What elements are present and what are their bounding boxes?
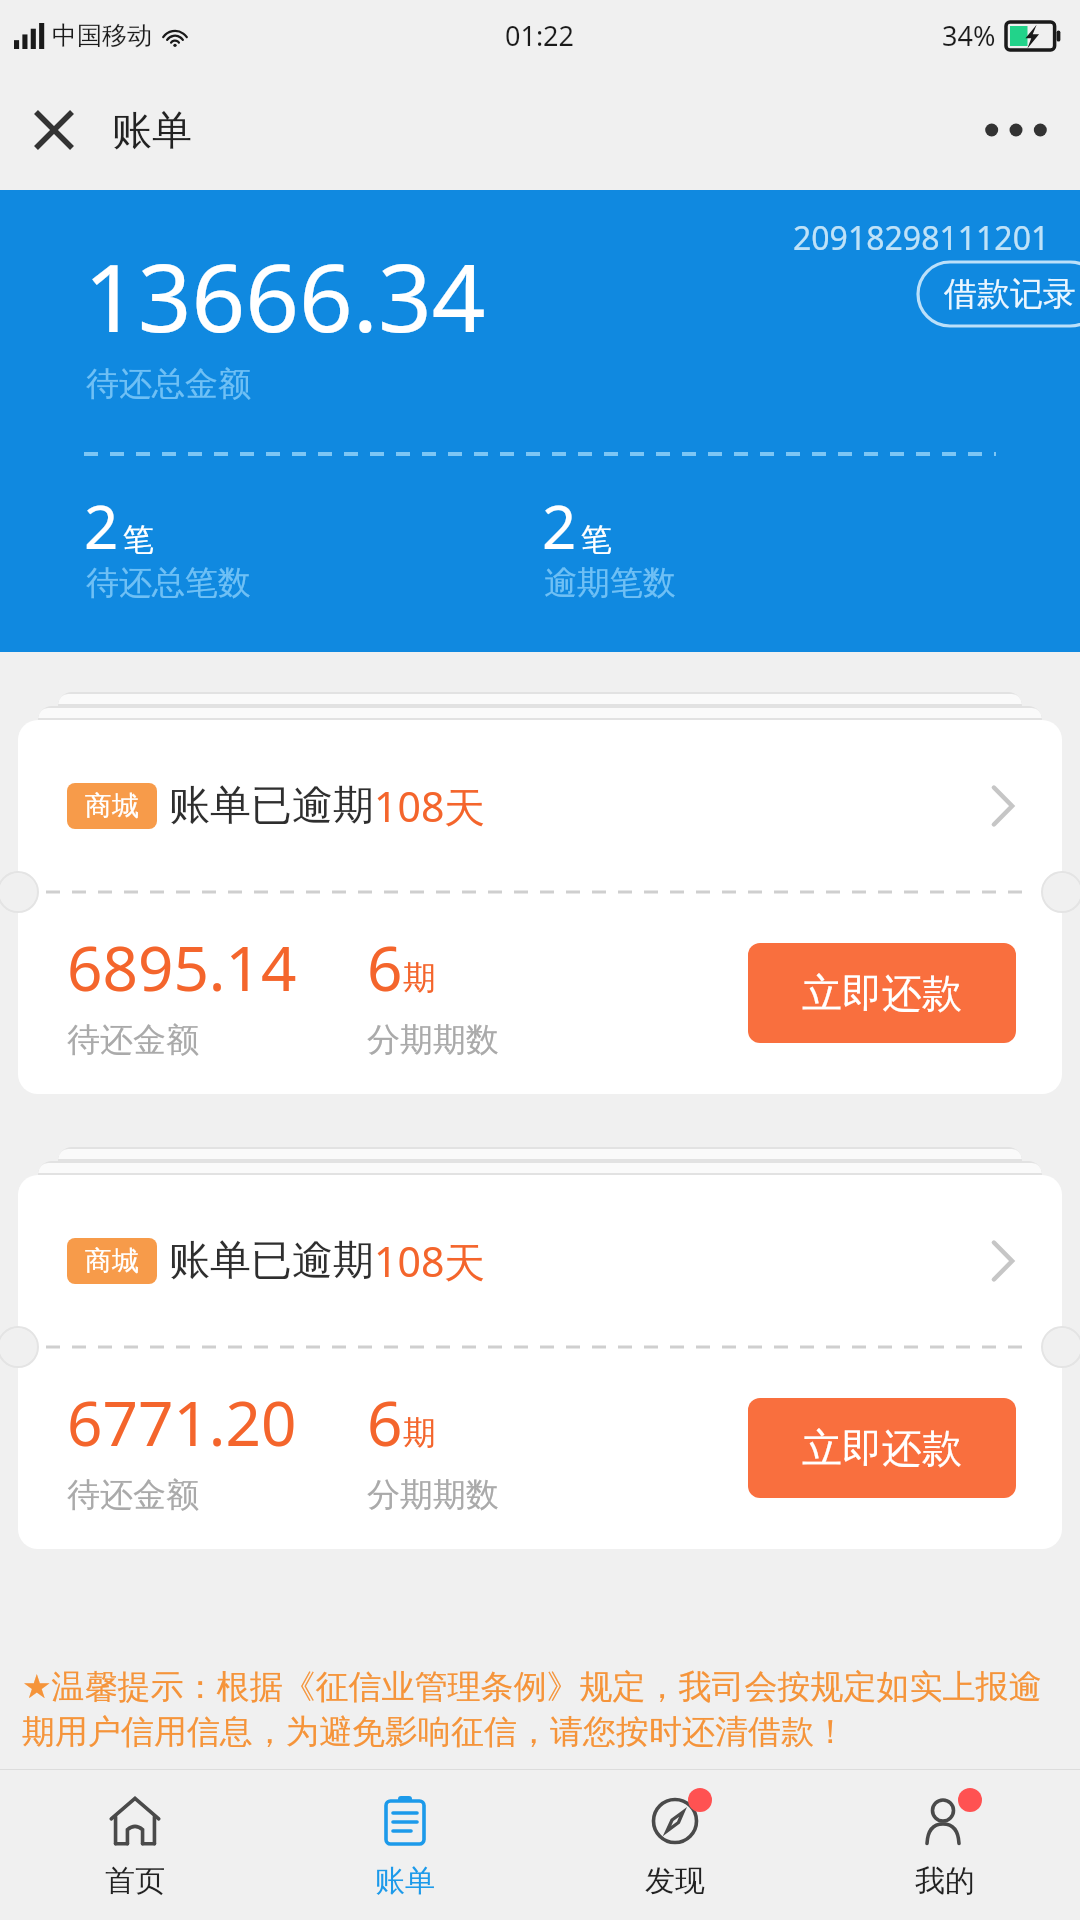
staticText: 分期期数 [367, 1474, 499, 1516]
staticText: ★温馨提示：根据《征信业管理条例》规定，我司会按规定如实上报逾期用户信用信息，为… [22, 1666, 1058, 1753]
staticText: 待还金额 [67, 1019, 199, 1061]
staticText: 6 [367, 1380, 403, 1464]
staticText: 108天 [374, 1233, 486, 1289]
staticText: 借款记录 [944, 273, 1076, 315]
staticText: 分期期数 [367, 1019, 499, 1061]
staticText: 期 [403, 957, 436, 999]
staticText: 6 [367, 925, 403, 1009]
staticText: 2 [542, 485, 577, 567]
staticText: 笔 [123, 520, 154, 559]
staticText: 待还金额 [67, 1474, 199, 1516]
staticText: 商城 [85, 789, 139, 823]
staticText: 34% [942, 17, 996, 54]
staticText: 20918298111201 [793, 216, 1050, 260]
button[interactable]: More options [972, 86, 1060, 174]
staticText: 01:22 [505, 17, 575, 54]
staticText: 6895.14 [67, 925, 297, 1009]
button[interactable]: 商城 [18, 1175, 1062, 1549]
staticText: 账单已逾期 [169, 1235, 374, 1287]
button[interactable]: Close [18, 94, 90, 166]
button[interactable]: 首页 [0, 1770, 270, 1920]
staticText: 2 [84, 485, 119, 567]
button[interactable]: 我的 [810, 1770, 1080, 1920]
staticText: 立即还款 [802, 968, 962, 1018]
button[interactable]: 商城 [18, 720, 1062, 1094]
staticText: 首页 [105, 1862, 165, 1900]
staticText: 待还总金额 [86, 363, 251, 405]
staticText: 待还总笔数 [86, 562, 251, 604]
staticText: 商城 [85, 1244, 139, 1278]
staticText: 账单已逾期 [169, 780, 374, 832]
staticText: 108天 [374, 778, 486, 834]
staticText: 6771.20 [67, 1380, 297, 1464]
staticText: 中国移动 [52, 20, 152, 51]
staticText: 期 [403, 1412, 436, 1454]
staticText: 逾期笔数 [544, 562, 676, 604]
button[interactable]: 账单 [270, 1770, 540, 1920]
button[interactable]: 发现 [540, 1770, 810, 1920]
staticText: 发现 [645, 1862, 705, 1900]
staticText: 立即还款 [802, 1423, 962, 1473]
staticText: 13666.34 [84, 232, 486, 360]
staticText: 账单 [112, 105, 192, 155]
button[interactable]: 立即还款 [748, 943, 1016, 1043]
button[interactable]: 立即还款 [748, 1398, 1016, 1498]
staticText: 账单 [375, 1862, 435, 1900]
staticText: 我的 [915, 1862, 975, 1900]
staticText: 笔 [581, 520, 612, 559]
button[interactable]: 借款记录 [918, 262, 1080, 326]
